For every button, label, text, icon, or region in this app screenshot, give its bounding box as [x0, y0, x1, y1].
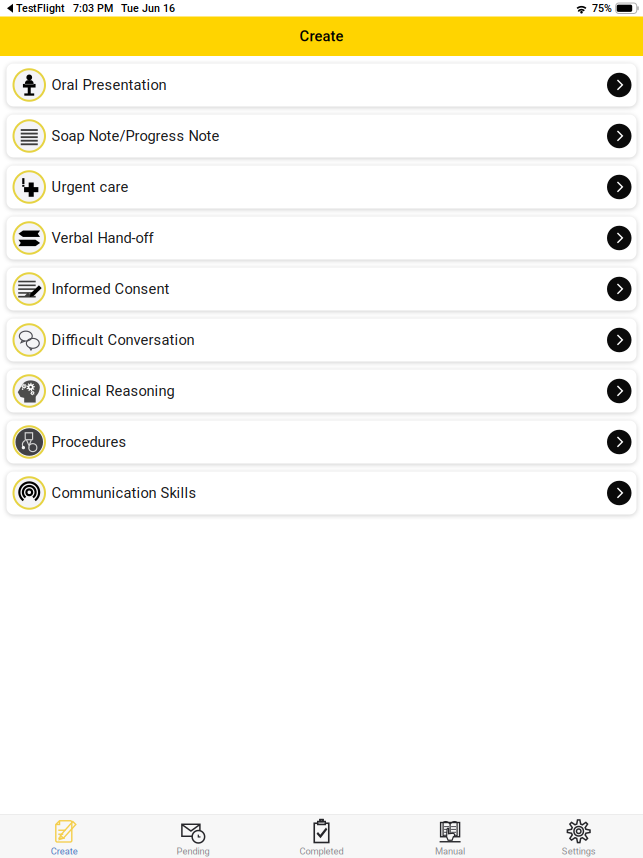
- button[interactable]: Completed: [257, 815, 386, 858]
- staticText: Urgent care: [51, 178, 128, 196]
- staticText: Clinical Reasoning: [51, 382, 174, 400]
- staticText: Difficult Conversation: [51, 331, 194, 349]
- staticText: 75%: [592, 2, 612, 14]
- staticText: Tue Jun 16: [121, 2, 175, 14]
- button[interactable]: Pending: [129, 815, 257, 858]
- button[interactable]: Difficult Conversation: [6, 318, 636, 361]
- button[interactable]: Soap Note/Progress Note: [6, 114, 636, 157]
- staticText: Create: [299, 28, 343, 45]
- button[interactable]: Settings: [514, 815, 643, 858]
- staticText: TestFlight: [16, 2, 65, 14]
- staticText: 7:03 PM: [73, 2, 113, 14]
- button[interactable]: Oral Presentation: [6, 63, 636, 106]
- staticText: Informed Consent: [51, 280, 169, 298]
- staticText: Oral Presentation: [51, 76, 166, 94]
- button[interactable]: Verbal Hand-off: [6, 216, 636, 259]
- button[interactable]: Clinical Reasoning: [6, 369, 636, 412]
- button[interactable]: Urgent care: [6, 165, 636, 208]
- staticText: Create: [51, 846, 78, 857]
- staticText: Verbal Hand-off: [51, 229, 153, 247]
- staticText: Soap Note/Progress Note: [51, 127, 219, 145]
- button[interactable]: Create: [0, 815, 129, 858]
- staticText: Manual: [435, 846, 465, 857]
- button[interactable]: Manual: [386, 815, 514, 858]
- button[interactable]: Create: [0, 16, 643, 56]
- staticText: Pending: [176, 846, 209, 857]
- staticText: Completed: [299, 846, 343, 857]
- button[interactable]: Communication Skills: [6, 471, 636, 514]
- button[interactable]: Informed Consent: [6, 267, 636, 310]
- staticText: Settings: [562, 846, 596, 857]
- staticText: Communication Skills: [51, 484, 196, 502]
- button[interactable]: Procedures: [6, 420, 636, 463]
- staticText: Procedures: [51, 433, 126, 451]
